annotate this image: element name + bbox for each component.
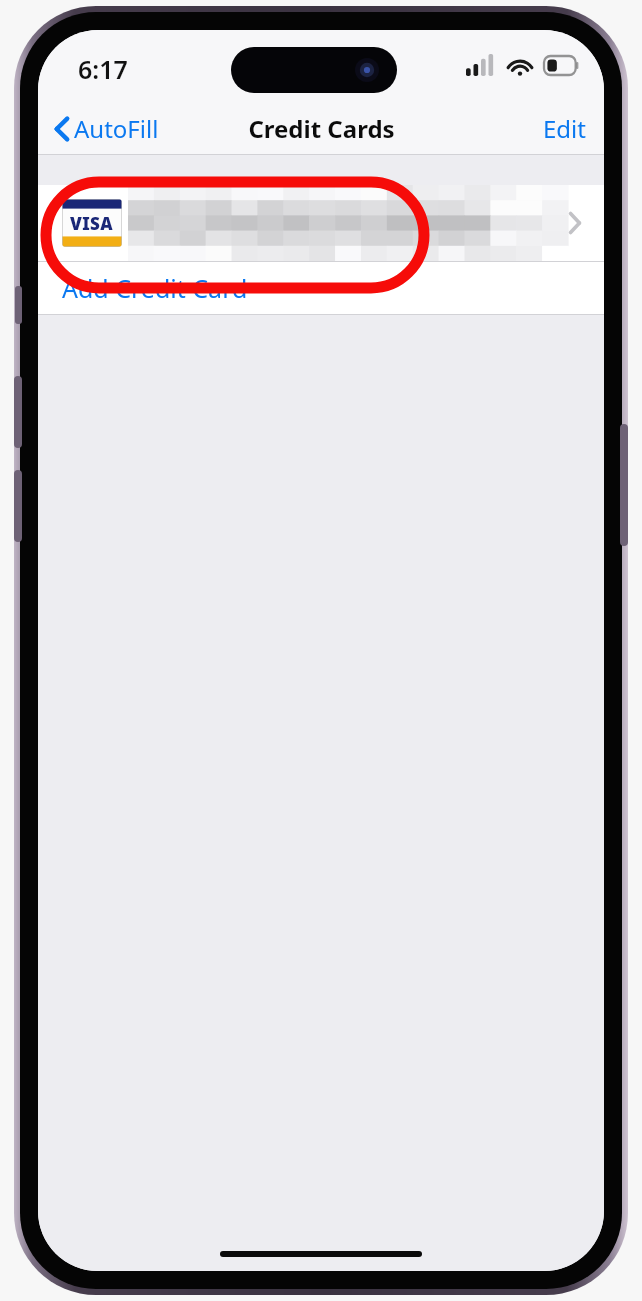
staticText: 6:17 [78,52,128,86]
staticText: AutoFill [74,112,159,145]
staticText: Credit Cards [248,112,395,145]
staticText: VISA [70,212,114,235]
button[interactable]: Add Credit Card [38,262,604,314]
button[interactable]: VISA [38,185,604,261]
button[interactable]: Edit [525,106,604,151]
staticText: Edit [543,112,586,145]
button[interactable]: AutoFill [38,108,169,149]
staticText: Add Credit Card [62,271,248,305]
